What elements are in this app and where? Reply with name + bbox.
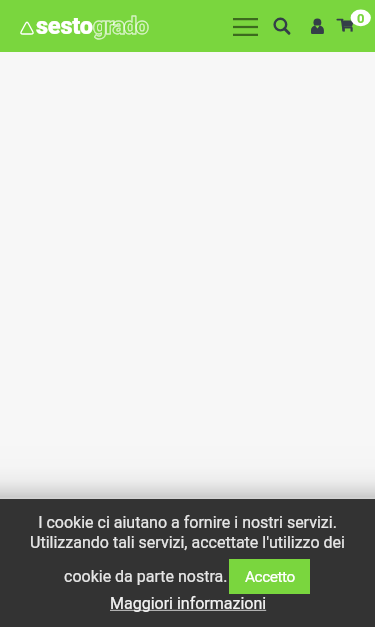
button[interactable]: Open menu [227, 8, 263, 44]
staticText: grado [93, 12, 148, 40]
button[interactable]: Account [306, 11, 324, 41]
staticText: Accetto [245, 568, 295, 586]
staticText: sesto [36, 12, 93, 40]
staticText: 0 [357, 11, 365, 26]
button[interactable]: Maggiori informazioni [110, 594, 267, 613]
button[interactable]: Shopping cart, 0 items [334, 6, 375, 46]
staticText: cookie da parte nostra. [64, 567, 228, 586]
staticText: I cookie ci aiutano a fornire i nostri s… [38, 513, 337, 532]
button[interactable]: sesto [17, 12, 148, 40]
staticText: Maggiori informazioni [110, 594, 267, 613]
button[interactable]: Search [266, 11, 296, 41]
button[interactable]: Accetto [229, 559, 310, 594]
staticText: Utilizzando tali servizi, accettate l'ut… [30, 533, 345, 552]
